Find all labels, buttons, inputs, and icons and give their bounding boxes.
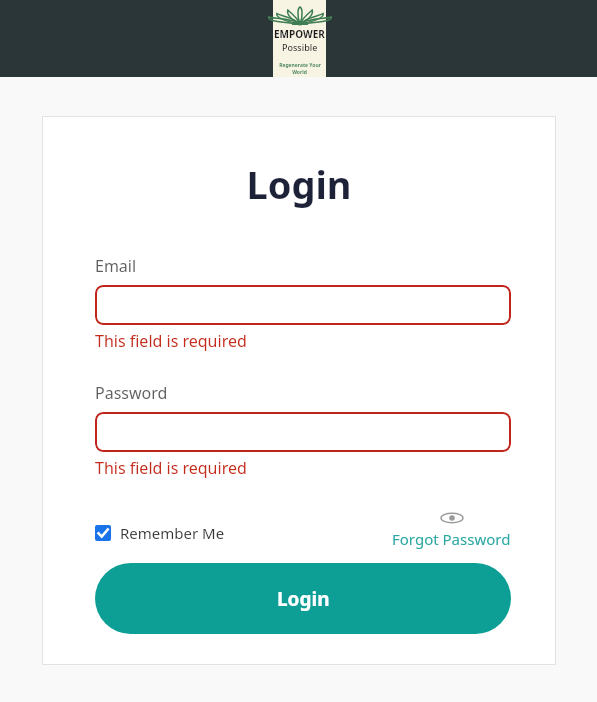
staticText: EMPOWER (274, 27, 325, 41)
button[interactable]: Empower Possible logo (273, 0, 326, 77)
staticText: Login (277, 586, 330, 612)
button[interactable]: Login (95, 563, 511, 634)
staticText: Email (95, 255, 137, 277)
staticText: Possible (282, 41, 318, 53)
button[interactable] (95, 412, 511, 452)
staticText: Password (95, 382, 168, 404)
staticText: This field is required (95, 330, 247, 352)
staticText: Forgot Password (392, 529, 511, 549)
staticText: Remember Me (120, 523, 225, 543)
staticText: Regenerate Your (279, 62, 321, 69)
button[interactable]: Show password (392, 511, 511, 549)
button[interactable] (95, 285, 511, 325)
staticText: World (292, 69, 307, 76)
staticText: This field is required (95, 457, 247, 479)
other: Show password (441, 511, 463, 525)
button[interactable]: Remember Me (95, 523, 225, 543)
staticText: Login (246, 158, 352, 210)
